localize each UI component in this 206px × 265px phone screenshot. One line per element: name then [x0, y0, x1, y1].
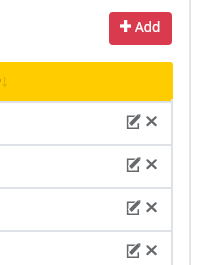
button[interactable]: Delete [144, 110, 158, 130]
button[interactable]: Delete [144, 196, 158, 216]
button[interactable]: Edit [124, 153, 143, 173]
button[interactable]: Add [109, 12, 172, 45]
button[interactable]: Delete [144, 153, 158, 173]
button[interactable]: Edit [124, 196, 143, 216]
button[interactable]: Sort column [0, 62, 173, 101]
button[interactable]: Edit [0, 189, 173, 230]
button[interactable]: Edit [0, 146, 173, 187]
button[interactable]: Edit [0, 232, 173, 265]
button[interactable]: Edit [124, 110, 143, 130]
button[interactable]: Delete [144, 239, 158, 259]
staticText: Add [135, 18, 161, 36]
button[interactable]: Edit [0, 103, 173, 144]
button[interactable]: Edit [124, 239, 143, 259]
